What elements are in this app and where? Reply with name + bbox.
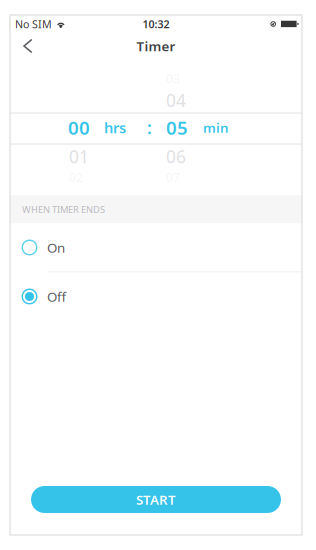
staticText: 07	[166, 169, 180, 185]
staticText: 00	[68, 115, 90, 140]
button[interactable]: Off	[10, 272, 302, 320]
staticText: On	[47, 239, 65, 256]
button[interactable]: Back	[10, 33, 46, 59]
staticText: Timer	[136, 37, 175, 55]
staticText: Off	[47, 288, 66, 305]
staticText: min	[203, 119, 229, 136]
button[interactable]: On	[10, 223, 302, 271]
button[interactable]: START	[31, 486, 281, 513]
staticText: 05	[166, 115, 188, 140]
staticText: :	[147, 116, 152, 139]
staticText: 02	[69, 169, 83, 185]
staticText: 03	[166, 70, 180, 86]
staticText: hrs	[104, 118, 126, 137]
staticText: WHEN TIMER ENDS	[22, 203, 105, 216]
staticText: 04	[166, 89, 186, 112]
staticText: 10:32	[142, 17, 169, 31]
staticText: 06	[166, 145, 186, 168]
staticText: 01	[69, 145, 89, 168]
staticText: START	[136, 491, 176, 508]
staticText: No SIM	[15, 17, 52, 31]
